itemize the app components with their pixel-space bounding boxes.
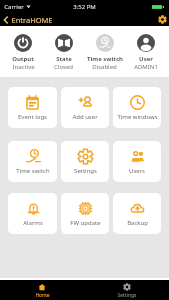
staticText: Users	[129, 167, 145, 175]
staticText: Settings	[74, 167, 97, 175]
staticText: Inactive	[12, 63, 35, 71]
button[interactable]: FW update	[61, 193, 109, 234]
staticText: Output	[12, 55, 34, 63]
staticText: Alarms	[23, 219, 43, 227]
staticText: Closed	[54, 63, 73, 71]
button[interactable]: Settings	[156, 13, 169, 26]
button[interactable]: User	[125, 26, 166, 71]
staticText: Backup	[127, 219, 148, 227]
button[interactable]: Backup	[113, 193, 161, 234]
staticText: Add user	[72, 113, 98, 121]
button[interactable]: State	[43, 26, 84, 71]
staticText: 3:52 PM	[73, 3, 96, 11]
staticText: EntraHOME	[11, 15, 53, 25]
staticText: State	[56, 55, 72, 63]
staticText: Event logs	[18, 113, 47, 121]
staticText: ADMIN1	[134, 63, 158, 71]
staticText: Disabled	[92, 63, 117, 71]
button[interactable]: Users	[113, 141, 161, 182]
staticText: Time switch	[87, 55, 123, 63]
button[interactable]: Add user	[61, 87, 109, 128]
staticText: Time switch	[16, 167, 50, 175]
staticText: Time windows	[117, 113, 158, 121]
button[interactable]: Time windows	[113, 87, 161, 128]
button[interactable]: Alarms	[8, 193, 57, 234]
staticText: Carrier	[4, 3, 24, 11]
staticText: Home	[35, 292, 50, 299]
staticText: FW update	[70, 219, 101, 227]
button[interactable]: Event logs	[8, 87, 57, 128]
staticText: Settings	[117, 292, 137, 299]
button[interactable]: Home	[0, 280, 84, 300]
button[interactable]: EntraHOME	[0, 15, 57, 25]
staticText: User	[139, 55, 153, 63]
button[interactable]: Settings	[84, 280, 169, 300]
button[interactable]: Time switch	[84, 26, 125, 71]
button[interactable]: Output	[3, 26, 43, 71]
button[interactable]: Settings	[61, 141, 109, 182]
button[interactable]: Time switch	[8, 141, 57, 182]
